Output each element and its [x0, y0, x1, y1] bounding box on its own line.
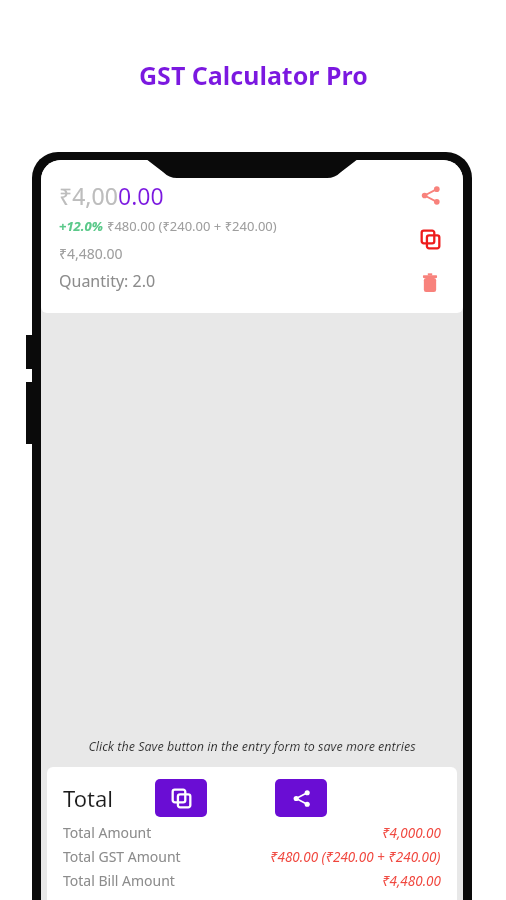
staticText: ₹4,480.00: [59, 244, 123, 263]
button[interactable]: Copy total: [155, 779, 207, 817]
staticText: ₹480.00 (₹240.00 + ₹240.00): [270, 848, 441, 866]
staticText: ₹4,00: [59, 180, 118, 211]
staticText: ₹480.00 (₹240.00 + ₹240.00): [107, 217, 277, 235]
staticText: 0.00: [118, 180, 164, 211]
staticText: Total: [63, 783, 113, 813]
staticText: Total Bill Amount: [63, 871, 175, 890]
button[interactable]: Copy entry: [413, 222, 447, 256]
button[interactable]: ₹4,00: [41, 160, 463, 313]
button[interactable]: Share entry: [413, 178, 447, 212]
staticText: Click the Save button in the entry form …: [88, 738, 416, 755]
staticText: ₹4,480.00: [382, 872, 441, 890]
staticText: Total Amount: [63, 823, 152, 842]
staticText: ₹4,000.00: [382, 824, 441, 842]
button[interactable]: Share total: [275, 779, 327, 817]
staticText: Quantity: 2.0: [59, 270, 156, 292]
staticText: Total GST Amount: [63, 847, 181, 866]
staticText: +12.0%: [59, 217, 107, 235]
staticText: GST Calculator Pro: [139, 58, 368, 92]
button[interactable]: Delete entry: [413, 266, 447, 300]
